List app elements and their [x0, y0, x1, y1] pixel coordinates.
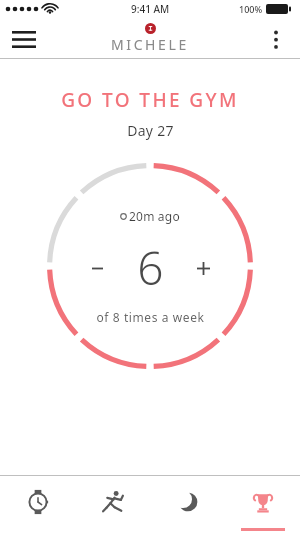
button[interactable]: Increase	[186, 251, 220, 285]
button[interactable]: Menu	[6, 21, 42, 57]
staticText: 6	[137, 236, 164, 299]
staticText: MICHELE	[111, 35, 189, 54]
staticText: Day 27	[127, 121, 174, 140]
button[interactable]: Goals	[225, 476, 300, 533]
button[interactable]: Decrease	[80, 251, 114, 285]
staticText: 9:41 AM	[131, 2, 170, 16]
button[interactable]: Watch	[0, 476, 75, 533]
staticText: 100%	[239, 3, 263, 15]
staticText: GO TO THE GYM	[61, 87, 239, 113]
button[interactable]: Sleep	[150, 476, 225, 533]
button[interactable]: More options	[258, 21, 294, 57]
staticText: 20m ago	[129, 208, 180, 224]
staticText: of 8 times a week	[96, 309, 205, 325]
button[interactable]: Activity	[75, 476, 150, 533]
